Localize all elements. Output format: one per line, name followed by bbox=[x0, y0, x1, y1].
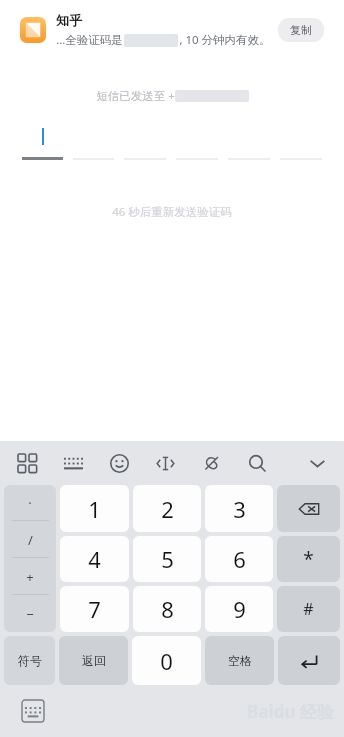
staticText: 1 bbox=[88, 494, 101, 524]
button[interactable]: 返回 bbox=[59, 636, 128, 685]
staticText: * bbox=[303, 546, 314, 572]
button[interactable]: 8 bbox=[133, 586, 201, 632]
button[interactable]: 2 bbox=[133, 485, 201, 532]
staticText: 2 bbox=[161, 494, 174, 524]
button[interactable]: Backspace bbox=[277, 485, 340, 532]
button[interactable]: 5 bbox=[133, 536, 201, 582]
staticText: 46 秒后重新发送验证码 bbox=[112, 204, 232, 220]
button[interactable]: 符号 bbox=[4, 636, 55, 685]
staticText: / bbox=[28, 531, 33, 549]
staticText: Baidu 经验 bbox=[247, 700, 334, 723]
button[interactable]: 6 bbox=[205, 536, 273, 582]
button[interactable]: 1 bbox=[60, 485, 129, 532]
button[interactable]: 9 bbox=[205, 586, 273, 632]
staticText: 8 bbox=[161, 594, 174, 624]
staticText: 短信已发送至 + bbox=[96, 88, 175, 104]
button[interactable]: / bbox=[4, 521, 56, 558]
staticText: 空格 bbox=[228, 653, 252, 668]
button[interactable]: 复制 bbox=[278, 18, 324, 42]
button[interactable]: + bbox=[4, 558, 56, 595]
staticText: # bbox=[303, 598, 314, 620]
staticText: 知乎 bbox=[56, 12, 82, 28]
button[interactable]: Emoji bbox=[106, 450, 132, 476]
staticText: 5 bbox=[161, 544, 174, 574]
button[interactable]: # bbox=[277, 586, 340, 632]
staticText: − bbox=[26, 605, 34, 623]
button[interactable]: Keyboard layout bbox=[60, 450, 86, 476]
button[interactable]: · bbox=[4, 485, 56, 521]
button[interactable]: 0 bbox=[132, 636, 201, 685]
button[interactable]: Text cursor bbox=[152, 450, 178, 476]
button[interactable]: Apps bbox=[14, 450, 40, 476]
button[interactable]: Search bbox=[244, 450, 270, 476]
button[interactable]: Clipboard bbox=[198, 450, 224, 476]
staticText: 返回 bbox=[82, 653, 106, 668]
staticText: , 10 分钟内有效。 bbox=[179, 32, 271, 48]
button[interactable]: 知乎 bbox=[8, 2, 336, 58]
staticText: 9 bbox=[233, 594, 246, 624]
staticText: 7 bbox=[88, 594, 101, 624]
staticText: 4 bbox=[88, 544, 101, 574]
button[interactable]: Hide keyboard bbox=[304, 450, 330, 476]
button[interactable]: Enter bbox=[278, 636, 340, 685]
staticText: 复制 bbox=[290, 23, 312, 37]
staticText: 符号 bbox=[18, 653, 42, 668]
button[interactable]: 7 bbox=[60, 586, 129, 632]
staticText: …全验证码是 bbox=[56, 32, 123, 48]
button[interactable]: * bbox=[277, 536, 340, 582]
button[interactable]: 3 bbox=[205, 485, 273, 532]
button[interactable]: 4 bbox=[60, 536, 129, 582]
button[interactable]: Switch keyboard bbox=[20, 698, 46, 724]
button[interactable] bbox=[22, 126, 322, 160]
staticText: 3 bbox=[233, 494, 246, 524]
button[interactable]: 46 秒后重新发送验证码 bbox=[106, 198, 238, 226]
button[interactable]: 空格 bbox=[205, 636, 274, 685]
staticText: + bbox=[26, 568, 34, 586]
staticText: · bbox=[28, 494, 32, 512]
staticText: 0 bbox=[160, 646, 173, 676]
staticText: 6 bbox=[233, 544, 246, 574]
button[interactable]: − bbox=[4, 595, 56, 632]
